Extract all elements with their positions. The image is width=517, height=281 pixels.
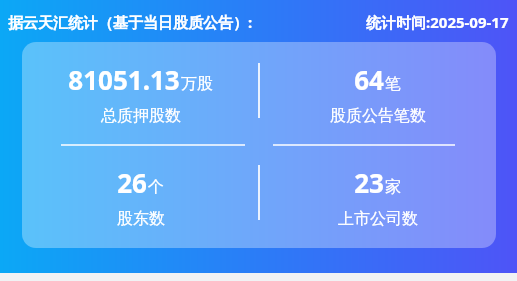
staticText: 81051.13 [68,62,180,97]
staticText: 23 [354,165,384,200]
button[interactable]: 26 [22,145,259,248]
staticText: 26 [117,165,147,200]
staticText: 上市公司数 [338,209,418,229]
staticText: 家 [385,177,401,197]
button[interactable]: 23 [259,145,496,248]
staticText: 总质押股数 [101,106,181,126]
staticText: 个 [148,177,164,197]
button[interactable]: 81051.13 [22,42,259,145]
staticText: 笔 [385,74,401,94]
staticText: 统计时间:2025-09-17 [366,12,509,32]
button[interactable]: 64 [259,42,496,145]
staticText: 股东数 [117,209,165,229]
staticText: 64 [354,62,384,97]
staticText: 万股 [181,74,213,94]
staticText: 据云天汇统计（基于当日股质公告）: [8,12,253,32]
staticText: 股质公告笔数 [330,106,426,126]
